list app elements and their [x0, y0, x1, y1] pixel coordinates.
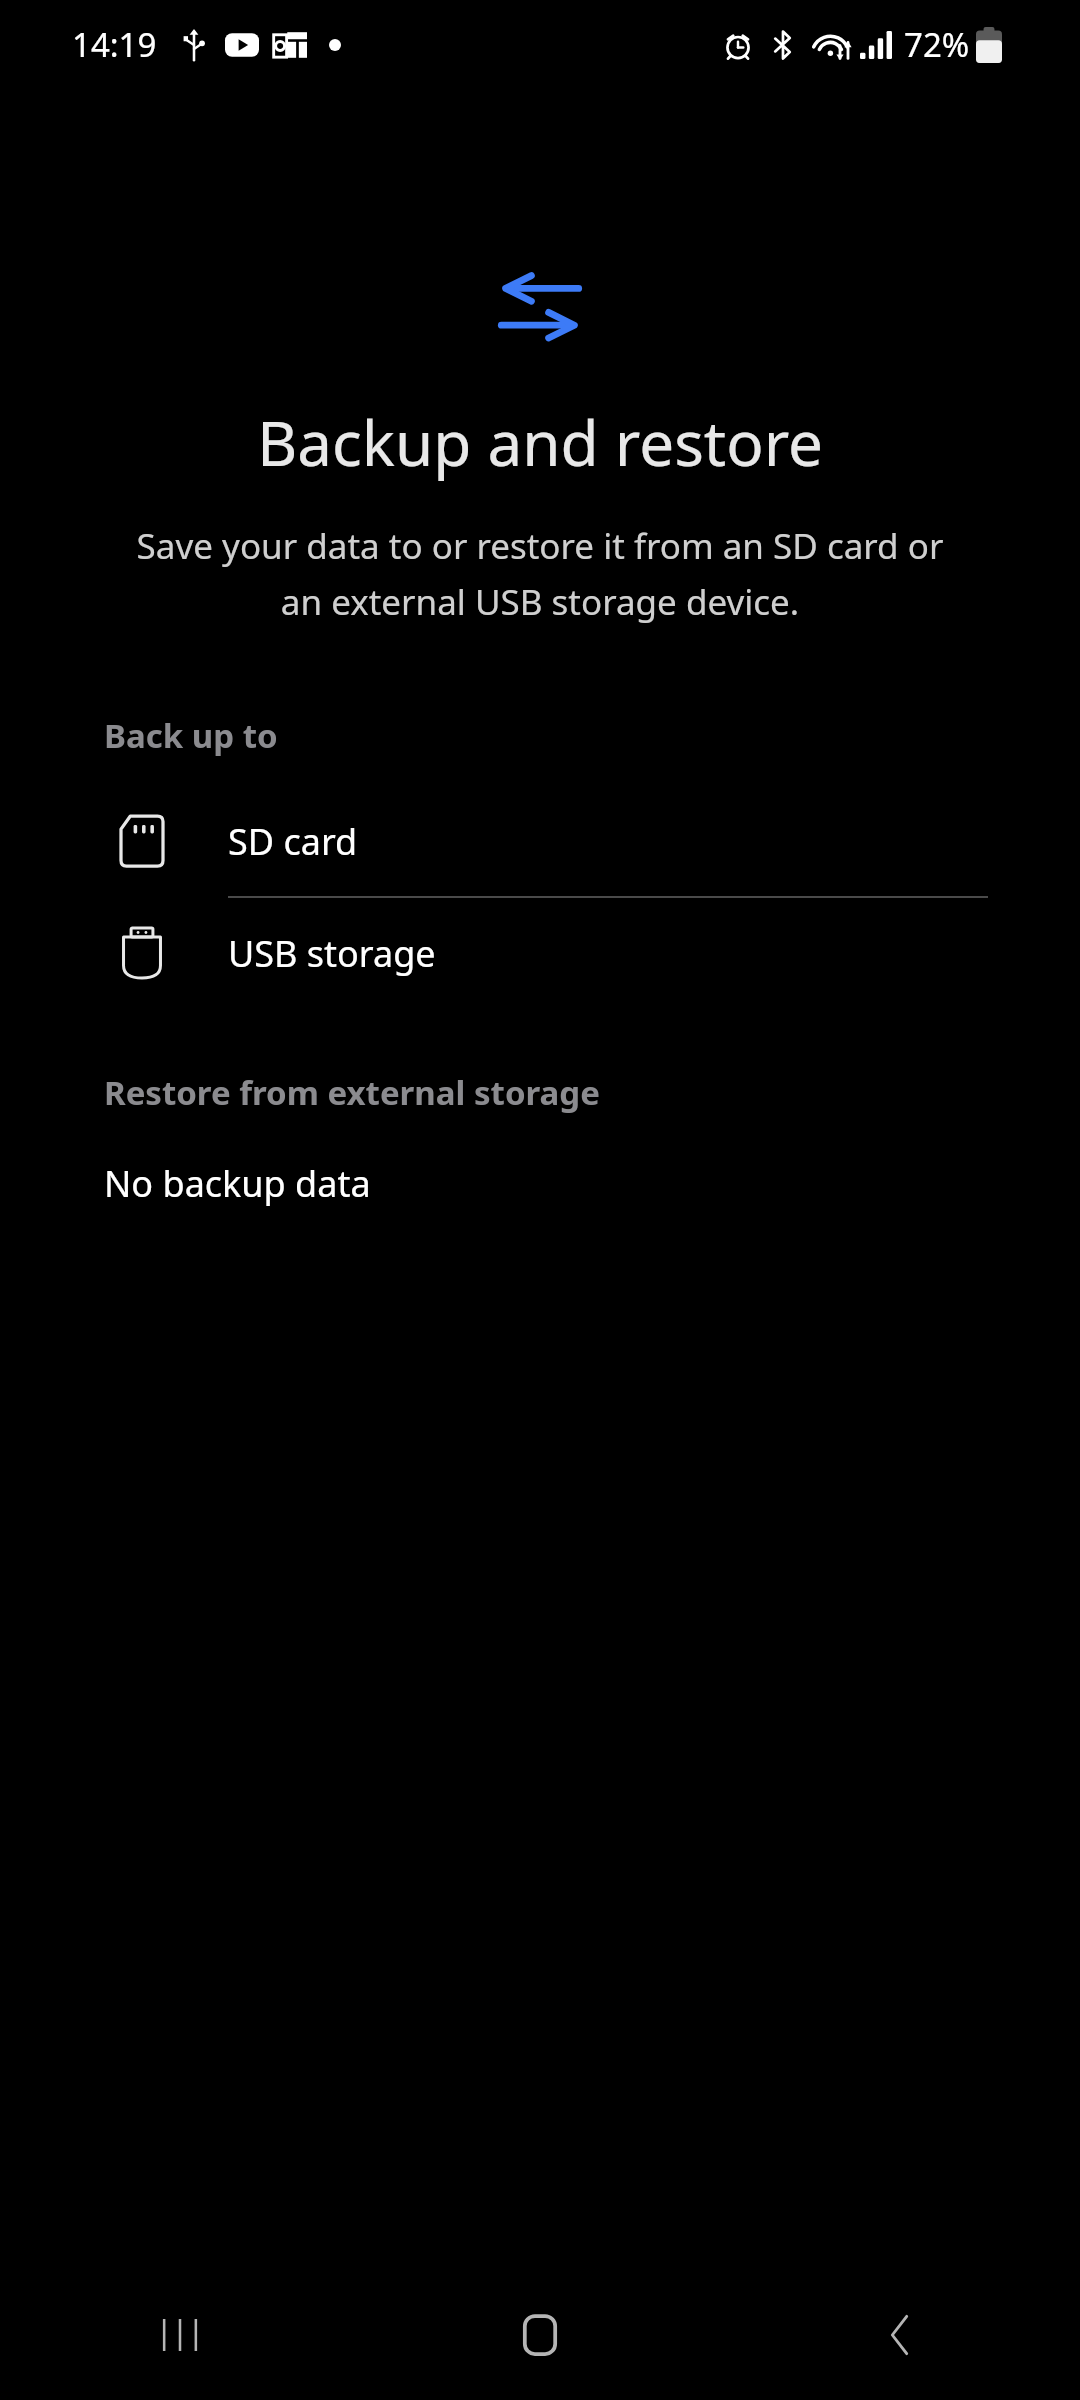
staticText: Backup and restore	[0, 400, 1080, 484]
staticText: USB storage	[228, 929, 436, 978]
button[interactable]: Recent apps	[0, 2270, 360, 2400]
staticText: 14:19	[72, 22, 157, 67]
staticText: Back up to	[104, 713, 278, 758]
button[interactable]: SD card	[0, 786, 1080, 896]
staticText: Restore from external storage	[104, 1070, 600, 1115]
button[interactable]: No backup data	[0, 1159, 1080, 1208]
button[interactable]: USB storage	[0, 898, 1080, 1008]
staticText: 72%	[904, 22, 970, 67]
button[interactable]: Back	[720, 2270, 1080, 2400]
staticText: SD card	[228, 817, 358, 866]
button[interactable]: Home	[360, 2270, 720, 2400]
staticText: Save your data to or restore it from an …	[120, 522, 960, 625]
